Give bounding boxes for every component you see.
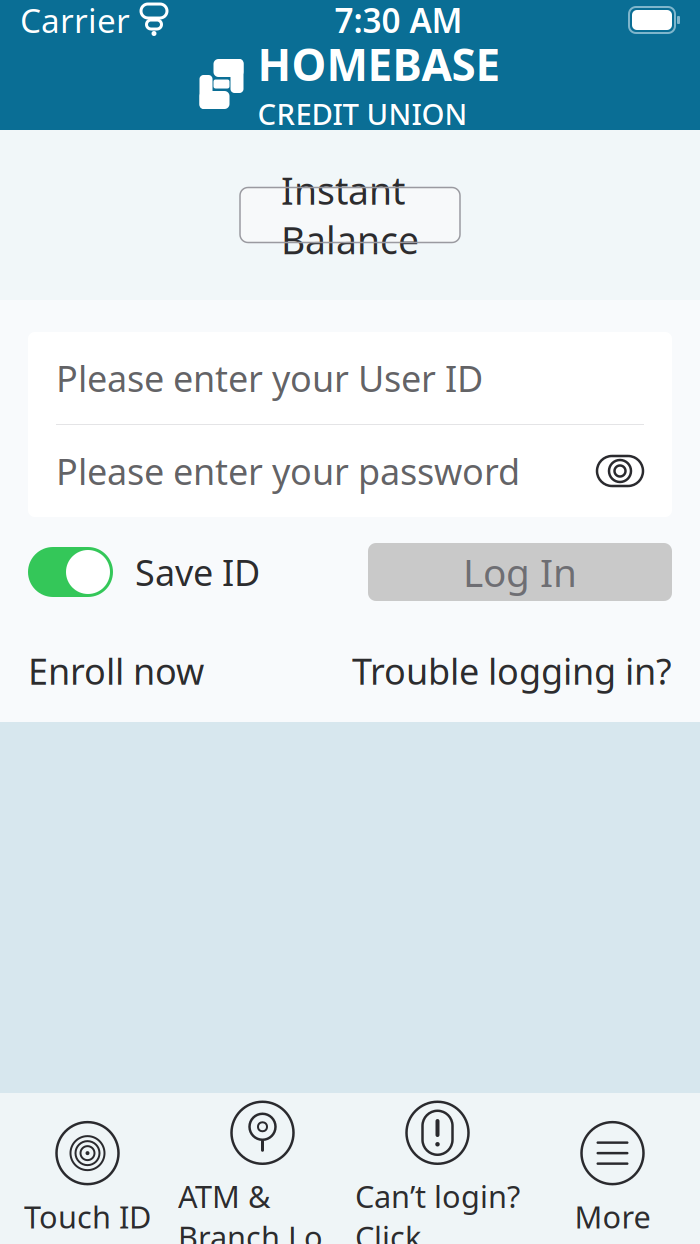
staticText: Please enter your User ID — [56, 354, 483, 402]
button[interactable]: Please enter your User ID — [28, 332, 672, 424]
staticText: Instant Balance — [281, 165, 419, 265]
button[interactable]: Can’t login? Click… — [350, 1124, 525, 1234]
staticText: Please enter your password — [56, 447, 520, 495]
button[interactable]: Trouble logging in? — [352, 639, 672, 703]
button[interactable]: Save ID — [28, 547, 260, 597]
button[interactable]: Instant Balance — [240, 187, 460, 242]
staticText: HOMEBASE — [257, 35, 500, 93]
staticText: ATM & Branch Lo… — [178, 1176, 347, 1244]
button[interactable]: Touch ID — [0, 1124, 175, 1234]
staticText: Trouble logging in? — [352, 647, 672, 695]
staticText: Log In — [463, 546, 577, 598]
staticText: Enroll now — [28, 647, 204, 695]
button[interactable]: More — [525, 1124, 700, 1234]
button[interactable]: ATM & Branch Lo… — [175, 1124, 350, 1234]
button[interactable]: Enroll now — [28, 639, 204, 703]
staticText: Save ID — [135, 548, 260, 596]
staticText: CREDIT UNION — [257, 94, 467, 133]
staticText: 7:30 AM — [334, 0, 462, 42]
staticText: More — [574, 1196, 650, 1237]
staticText: Carrier — [20, 0, 130, 42]
staticText: Can’t login? Click… — [355, 1176, 520, 1244]
button[interactable]: Please enter your password — [28, 425, 672, 517]
staticText: Touch ID — [24, 1196, 151, 1237]
button[interactable]: Log In — [368, 543, 672, 601]
